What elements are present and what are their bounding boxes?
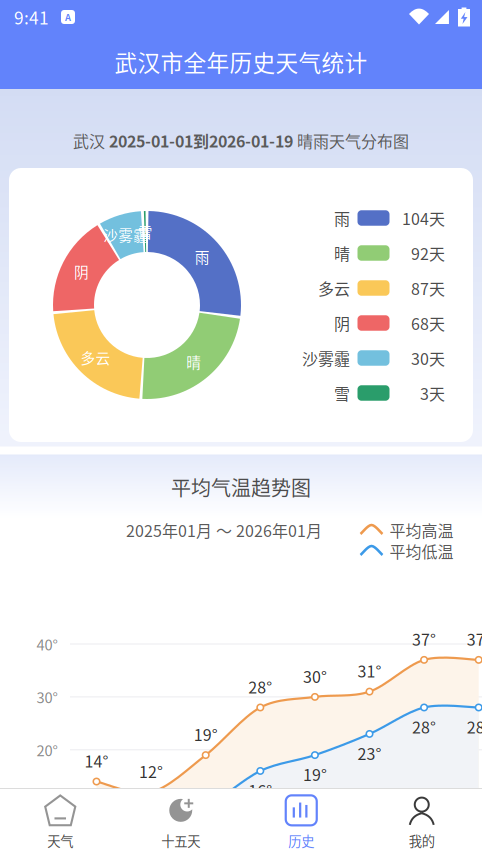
staticText: 雨 (195, 246, 210, 267)
staticText: 40° (36, 633, 57, 655)
button[interactable]: 历史 (241, 789, 361, 856)
staticText: 晴 (186, 351, 201, 372)
staticText: 30° (303, 664, 327, 687)
staticText: 92天 (411, 241, 445, 265)
button[interactable]: 天气 (0, 789, 120, 856)
staticText: 28° (412, 715, 436, 738)
staticText: 平均高温 (389, 518, 453, 542)
staticText: 阴 (74, 261, 89, 282)
staticText: 沙雾霾 (302, 346, 350, 370)
staticText: 晴 (334, 241, 350, 265)
staticText: 68天 (411, 311, 445, 335)
staticText: 历史 (288, 831, 314, 850)
staticText: 武汉 2025-01-01到2026-01-19 晴雨天气分布图 (73, 129, 409, 152)
staticText: 30天 (411, 346, 445, 370)
staticText: 阴 (334, 311, 350, 335)
staticText: 雨 (334, 206, 350, 230)
button[interactable]: 十五天 (120, 789, 241, 856)
staticText: 37° (412, 627, 436, 650)
staticText: 28° (248, 675, 272, 698)
staticText: 104天 (402, 206, 445, 230)
staticText: 23° (357, 741, 381, 764)
staticText: 31° (357, 659, 381, 682)
staticText: 我的 (409, 831, 435, 850)
staticText: 平均低温 (389, 539, 453, 563)
staticText: 沙雾霾 (103, 224, 148, 245)
staticText: 天气 (47, 831, 73, 850)
staticText: 多云 (80, 347, 110, 368)
staticText: 2025年01月 ～ 2026年01月 (126, 518, 322, 542)
staticText: 武汉市全年历史天气统计 (114, 45, 367, 78)
staticText: 多云 (318, 276, 350, 300)
staticText: 9:41 (14, 4, 49, 30)
staticText: 30° (36, 686, 57, 707)
button[interactable]: 我的 (361, 789, 482, 856)
staticText: 28° (467, 715, 482, 738)
staticText: 20° (36, 739, 57, 760)
staticText: 19° (194, 722, 218, 746)
staticText: 37° (467, 627, 482, 650)
staticText: 雪 (334, 381, 350, 405)
staticText: A (65, 10, 71, 24)
staticText: 16° (248, 778, 272, 802)
staticText: 19° (303, 762, 327, 786)
staticText: 雪 (138, 221, 153, 242)
staticText: 87天 (411, 276, 445, 300)
staticText: 3天 (420, 381, 445, 405)
staticText: 9° (198, 815, 213, 839)
staticText: 14° (84, 749, 108, 772)
staticText: 平均气温趋势图 (171, 472, 311, 501)
staticText: 12° (139, 759, 163, 783)
staticText: 十五天 (161, 831, 200, 850)
